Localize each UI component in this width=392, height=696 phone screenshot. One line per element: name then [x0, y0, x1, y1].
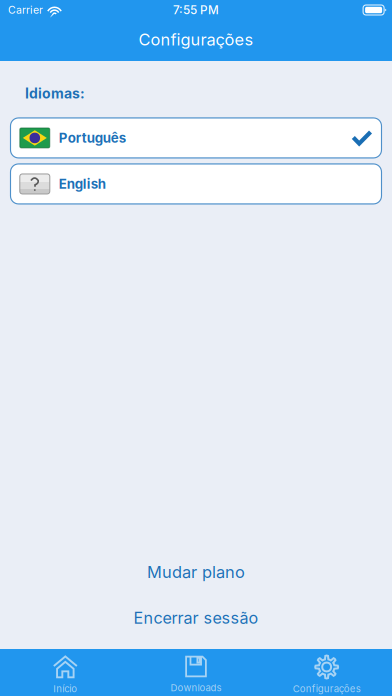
button[interactable]: Configurações — [261, 649, 392, 696]
staticText: Configurações — [293, 683, 361, 695]
button[interactable]: Português — [10, 118, 381, 158]
staticText: 7:55 PM — [173, 3, 219, 17]
staticText: Configurações — [138, 30, 253, 49]
button[interactable]: Início — [0, 649, 131, 696]
staticText: Português — [59, 130, 126, 146]
staticText: Idiomas: — [25, 85, 85, 102]
staticText: English — [59, 176, 106, 192]
button[interactable]: Mudar plano — [0, 558, 392, 586]
staticText: Início — [53, 683, 77, 695]
staticText: Encerrar sessão — [133, 608, 258, 628]
button[interactable]: English — [10, 164, 381, 204]
staticText: Downloads — [170, 682, 221, 694]
button[interactable]: Encerrar sessão — [0, 604, 392, 632]
staticText: Mudar plano — [147, 562, 245, 582]
staticText: Carrier — [8, 4, 43, 16]
button[interactable]: Downloads — [131, 649, 261, 696]
